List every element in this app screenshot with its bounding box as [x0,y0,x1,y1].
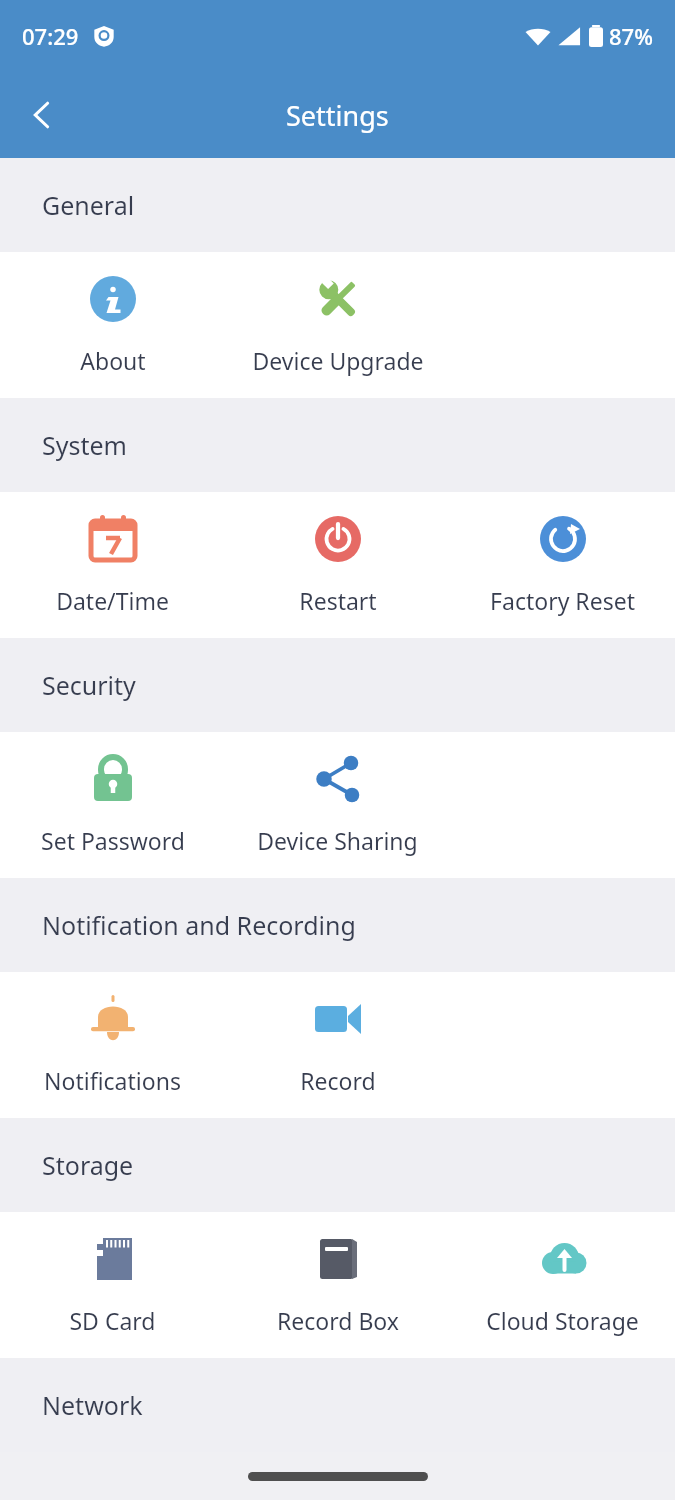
button[interactable]: Record Box [225,1212,450,1358]
staticText: Device Upgrade [252,345,424,376]
staticText: Record Box [277,1305,399,1336]
staticText: Set Password [41,825,185,856]
staticText: Notification and Recording [42,908,356,942]
staticText: Network [42,1388,143,1422]
button[interactable]: Notifications [0,972,225,1118]
staticText: Factory Reset [490,585,635,616]
button[interactable]: Device Sharing [225,732,450,878]
staticText: 87% [609,21,653,51]
button[interactable]: Record [225,972,450,1118]
staticText: Date/Time [56,585,169,616]
button[interactable]: Back [14,87,70,143]
staticText: About [80,345,146,376]
button[interactable]: Device Upgrade [225,252,450,398]
button[interactable]: SD Card [0,1212,225,1358]
staticText: Notifications [44,1065,181,1096]
button[interactable]: Set Password [0,732,225,878]
button[interactable]: Restart [225,492,450,638]
staticText: Cloud Storage [486,1305,639,1336]
button[interactable]: Cloud Storage [450,1212,675,1358]
staticText: SD Card [69,1305,156,1336]
staticText: Settings [286,97,389,134]
button[interactable]: Factory Reset [450,492,675,638]
staticText: Restart [299,585,377,616]
staticText: Device Sharing [257,825,418,856]
button[interactable]: Date/Time [0,492,225,638]
staticText: Storage [42,1148,134,1182]
staticText: General [42,188,135,222]
staticText: Record [300,1065,376,1096]
staticText: Security [42,668,136,702]
staticText: 07:29 [22,21,79,51]
button[interactable]: About [0,252,225,398]
staticText: System [42,428,127,462]
